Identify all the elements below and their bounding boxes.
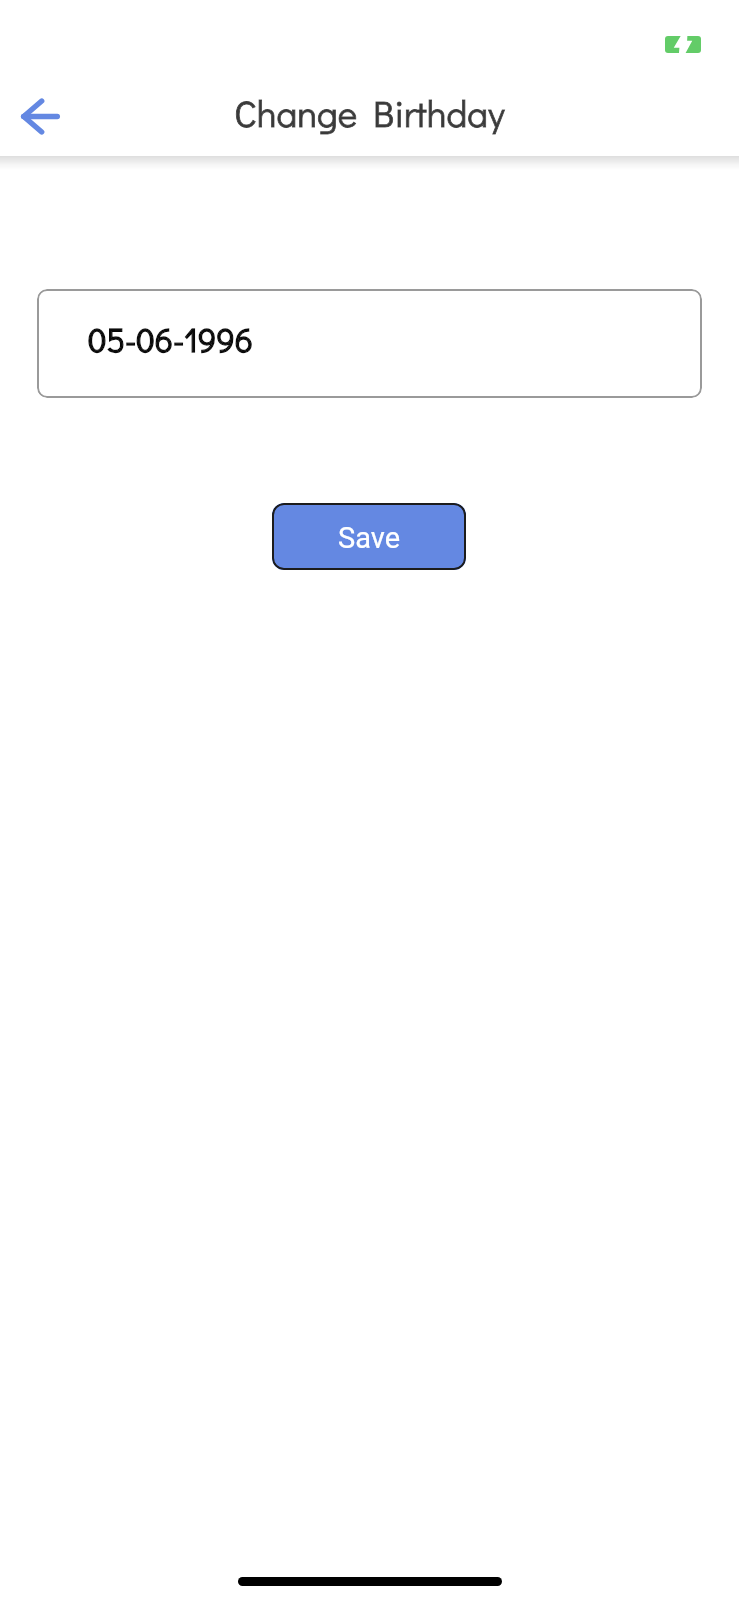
staticText: 05-06-1996 <box>88 317 254 360</box>
staticText: Save <box>338 521 401 555</box>
staticText: Change Birthday <box>234 88 505 137</box>
other: Battery charging <box>665 36 701 53</box>
staticText: Change Birthday <box>234 88 505 137</box>
staticText: 05-06-1996 <box>88 317 254 360</box>
button[interactable]: Back <box>0 72 76 160</box>
button[interactable]: Save <box>272 503 466 570</box>
button[interactable]: 05-06-1996 <box>37 289 702 398</box>
